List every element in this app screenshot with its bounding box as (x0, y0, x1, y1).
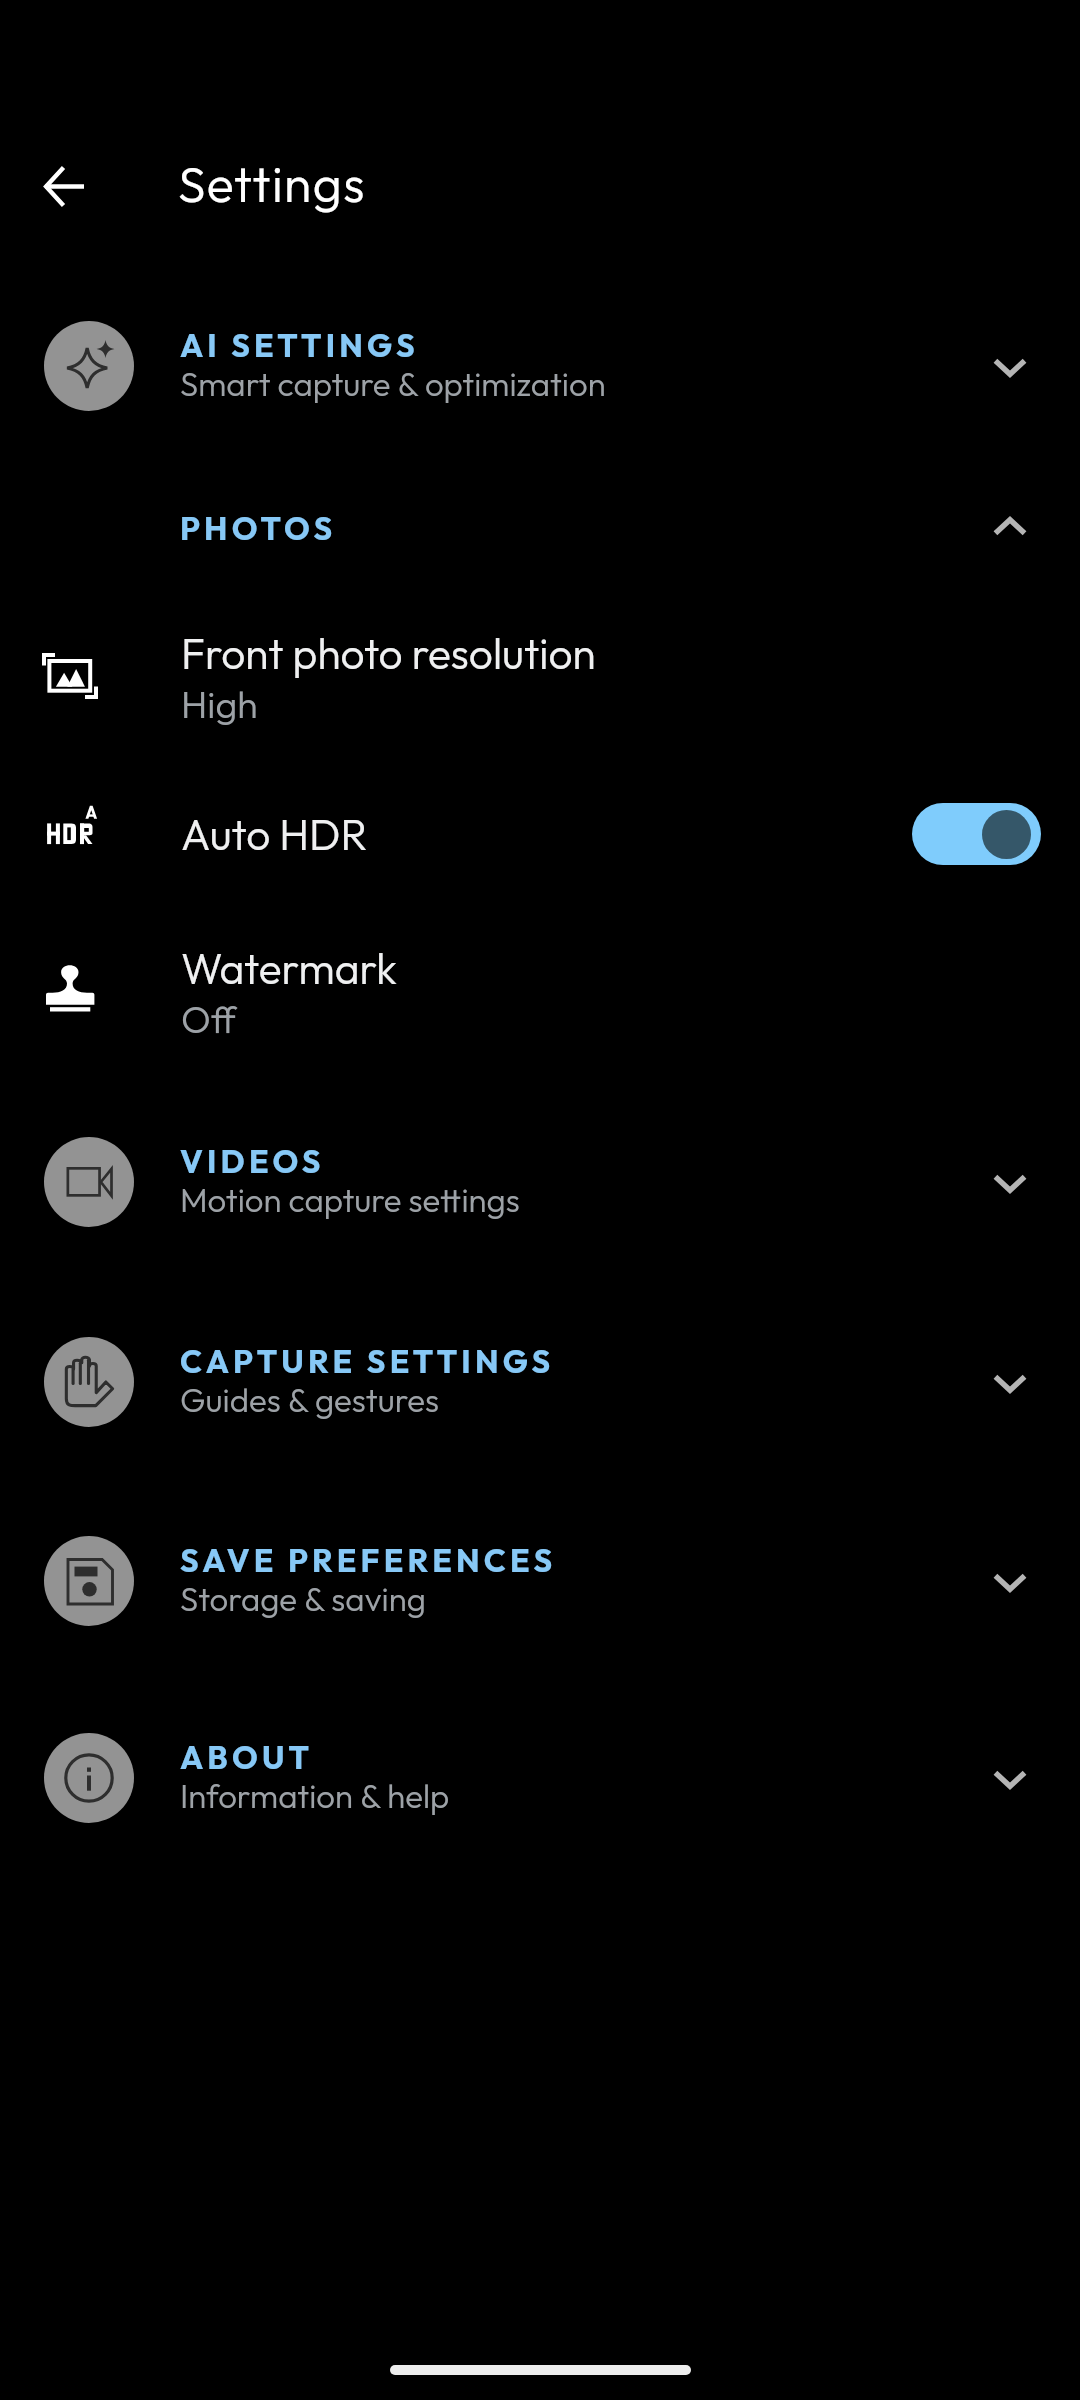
button[interactable]: ABOUT (0, 1693, 1080, 1863)
staticText: High (181, 680, 258, 727)
staticText: Settings (178, 152, 366, 215)
button[interactable]: Auto HDR (0, 749, 1080, 919)
button[interactable]: Expand ABOUT (969, 1737, 1051, 1819)
staticText: Motion capture settings (180, 1179, 520, 1221)
staticText: Watermark (181, 941, 398, 995)
staticText: Front photo resolution (181, 626, 596, 680)
button[interactable]: VIDEOS (0, 1097, 1080, 1267)
button[interactable]: CAPTURE SETTINGS (0, 1297, 1080, 1467)
button[interactable]: Watermark (0, 906, 1080, 1076)
button[interactable]: AI SETTINGS (0, 281, 1080, 451)
staticText: Off (181, 995, 237, 1042)
staticText: Auto HDR (181, 807, 368, 861)
button[interactable]: Auto HDR toggle (912, 803, 1041, 865)
staticText: Storage & saving (180, 1578, 426, 1620)
staticText: Guides & gestures (180, 1379, 439, 1421)
staticText: ABOUT (180, 1737, 314, 1777)
staticText: CAPTURE SETTINGS (180, 1341, 555, 1381)
button[interactable]: Back (23, 146, 103, 226)
staticText: Information & help (180, 1775, 450, 1817)
staticText: AI SETTINGS (180, 325, 419, 365)
button[interactable]: Expand VIDEOS (969, 1141, 1051, 1223)
button[interactable]: Expand AI SETTINGS (969, 325, 1051, 407)
button[interactable]: Front photo resolution (0, 591, 1080, 761)
staticText: SAVE PREFERENCES (180, 1540, 557, 1580)
button[interactable]: PHOTOS (0, 468, 1080, 588)
staticText: Smart capture & optimization (180, 363, 606, 405)
button[interactable]: Collapse Photos (969, 487, 1051, 569)
staticText: PHOTOS (180, 508, 337, 548)
button[interactable]: Expand CAPTURE SETTINGS (969, 1341, 1051, 1423)
button[interactable]: SAVE PREFERENCES (0, 1496, 1080, 1666)
button[interactable]: Expand SAVE PREFERENCES (969, 1540, 1051, 1622)
staticText: VIDEOS (180, 1141, 325, 1181)
